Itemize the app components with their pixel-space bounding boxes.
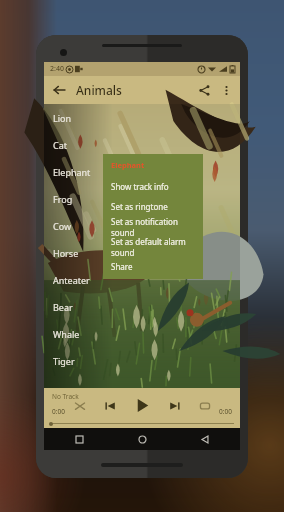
- button[interactable]: Cow: [44, 212, 240, 239]
- button[interactable]: Share: [192, 78, 216, 102]
- button[interactable]: Back: [196, 430, 214, 448]
- button[interactable]: Share: [103, 256, 203, 276]
- button[interactable]: Set as default alarm sound: [103, 236, 203, 256]
- staticText: Tiger: [53, 355, 75, 367]
- staticText: Cow: [53, 220, 72, 232]
- button[interactable]: Bear: [44, 293, 240, 320]
- button[interactable]: More options: [216, 78, 237, 102]
- staticText: 0:00: [52, 407, 65, 416]
- staticText: Set as default alarm sound: [111, 236, 203, 256]
- staticText: Elephant: [111, 160, 145, 170]
- staticText: Animals: [76, 82, 122, 98]
- button[interactable]: Home: [133, 430, 151, 448]
- button[interactable]: Back: [48, 79, 70, 101]
- staticText: Cat: [53, 139, 67, 151]
- button[interactable]: Set as notification sound: [103, 216, 203, 236]
- button[interactable]: Tiger: [44, 347, 240, 374]
- button[interactable]: Whale: [44, 320, 240, 347]
- button[interactable]: Show track info: [103, 176, 203, 196]
- button[interactable]: Shuffle: [71, 397, 89, 415]
- button[interactable]: Elephant: [44, 158, 240, 185]
- staticText: Horse: [53, 247, 79, 259]
- button[interactable]: Elephant: [103, 154, 203, 176]
- button[interactable]: Cat: [44, 131, 240, 158]
- button[interactable]: Horse: [44, 239, 240, 266]
- staticText: 2:40: [50, 64, 64, 74]
- staticText: Share: [111, 261, 133, 272]
- button[interactable]: Repeat: [196, 397, 214, 415]
- button[interactable]: Play: [131, 394, 154, 417]
- button[interactable]: Anteater: [44, 266, 240, 293]
- button[interactable]: Lion: [44, 104, 240, 131]
- staticText: Elephant: [53, 166, 91, 178]
- staticText: Frog: [53, 193, 73, 205]
- staticText: Show track info: [111, 181, 169, 192]
- staticText: Set as notification sound: [111, 216, 203, 236]
- staticText: Lion: [53, 112, 72, 124]
- staticText: Anteater: [53, 274, 90, 286]
- button[interactable]: Previous: [101, 397, 119, 415]
- staticText: Whale: [53, 328, 80, 340]
- button[interactable]: Next: [166, 397, 184, 415]
- button[interactable]: Set as ringtone: [103, 196, 203, 216]
- staticText: Set as ringtone: [111, 201, 168, 212]
- staticText: Bear: [53, 301, 73, 313]
- button[interactable]: Frog: [44, 185, 240, 212]
- staticText: No Track: [52, 392, 79, 401]
- staticText: 0:00: [219, 407, 232, 416]
- button[interactable]: Recents: [70, 430, 88, 448]
